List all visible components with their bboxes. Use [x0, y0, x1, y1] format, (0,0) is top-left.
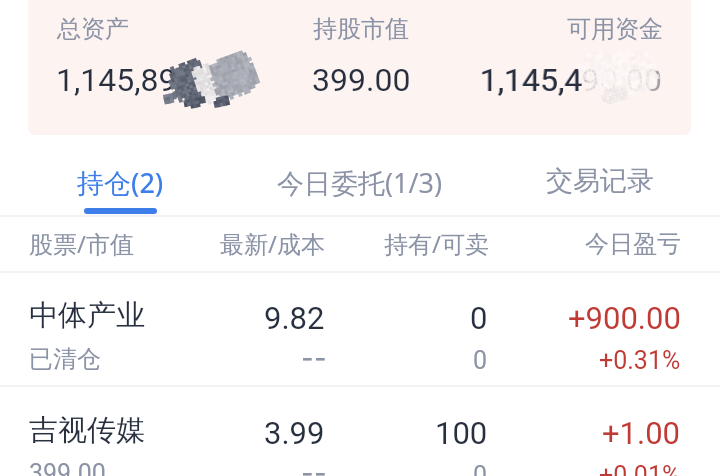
- staticText: 吉视传媒: [29, 412, 145, 449]
- staticText: 1,145,4: [480, 61, 583, 99]
- button[interactable]: 中体产业: [0, 272, 720, 386]
- button[interactable]: 持仓(2): [0, 134, 240, 215]
- staticText: 持有/可卖: [384, 227, 489, 260]
- staticText: 3.99: [264, 415, 325, 451]
- staticText: 今日委托(1/3): [277, 164, 443, 201]
- staticText: 1,145,490.00: [479, 61, 662, 99]
- staticText: 0: [473, 461, 488, 476]
- staticText: 已清仓: [29, 344, 101, 374]
- staticText: 交易记录: [546, 164, 654, 198]
- staticText: 9.82: [264, 300, 325, 336]
- staticText: 最新/成本: [220, 227, 325, 260]
- staticText: +0.31%: [599, 346, 681, 375]
- staticText: 持仓(2): [77, 164, 164, 201]
- staticText: +900.00: [568, 300, 681, 336]
- staticText: 399.00: [312, 61, 411, 99]
- staticText: +0.01%: [599, 461, 681, 476]
- staticText: 1,145,890.00: [56, 61, 239, 99]
- staticText: 可用资金: [567, 14, 663, 44]
- staticText: 中体产业: [29, 297, 145, 334]
- staticText: 0: [473, 346, 488, 375]
- staticText: 100: [435, 415, 488, 451]
- button[interactable]: 今日委托(1/3): [240, 134, 480, 215]
- button[interactable]: 交易记录: [480, 134, 720, 215]
- staticText: 总资产: [57, 14, 129, 44]
- staticText: 399.00: [29, 459, 106, 476]
- staticText: 今日盈亏: [585, 229, 681, 259]
- staticText: 持股市值: [313, 14, 409, 44]
- staticText: 股票/市值: [29, 227, 134, 260]
- button[interactable]: 吉视传媒: [0, 387, 720, 476]
- staticText: 0: [470, 300, 488, 336]
- staticText: +1.00: [602, 415, 681, 451]
